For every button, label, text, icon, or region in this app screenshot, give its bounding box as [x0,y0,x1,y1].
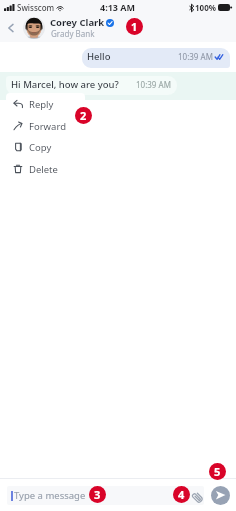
staticText: 5 [214,464,221,479]
staticText: 4 [178,487,185,502]
button[interactable]: Type a message [7,486,204,505]
staticText: Forward [29,120,66,133]
button[interactable]: Reply [6,93,85,115]
staticText: 3 [94,487,101,502]
button[interactable]: Hello [82,48,230,68]
staticText: Grady Bank [51,28,95,39]
button[interactable]: Delete [6,158,85,180]
staticText: Copy [29,141,52,154]
staticText: 2 [80,108,87,123]
staticText: Corey Clark [50,16,105,29]
button[interactable]: Forward [6,115,85,137]
button[interactable]: Hi Marcel, how are you? [6,76,177,95]
staticText: 1 [131,19,138,34]
staticText: Reply [29,98,54,111]
staticText: 100% [195,2,216,13]
button[interactable]: Corey Clark [23,14,113,42]
staticText: 4:13 AM [100,1,136,13]
button[interactable]: Copy [6,136,85,158]
staticText: Delete [29,163,58,176]
staticText: 10:39 AM [178,51,213,62]
staticText: Hi Marcel, how are you? [11,78,119,91]
button[interactable]: Attach [187,487,204,504]
button[interactable]: Send [211,486,230,505]
staticText: Swisscom [17,2,55,13]
button[interactable]: Back [0,14,22,42]
staticText: 10:39 AM [136,79,171,90]
staticText: Hello [87,50,111,63]
staticText: Type a message [14,489,86,502]
